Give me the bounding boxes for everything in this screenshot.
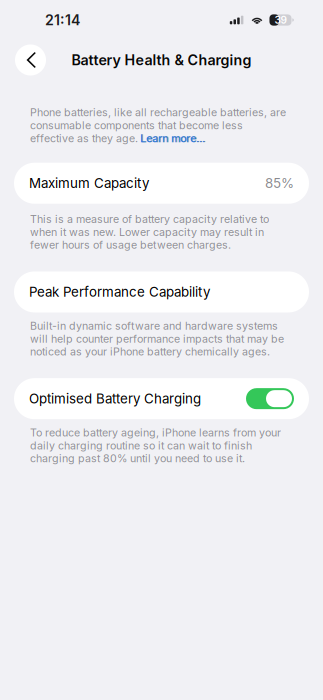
staticText: Phone batteries, like all rechargeable b… bbox=[30, 106, 286, 145]
staticText: Built-in dynamic software and hardware s… bbox=[30, 319, 284, 358]
staticText: This is a measure of battery capacity re… bbox=[30, 213, 269, 251]
staticText: Peak Performance Capability bbox=[29, 284, 210, 300]
staticText: 21:14 bbox=[45, 11, 80, 28]
button[interactable]: Back bbox=[15, 44, 46, 75]
button[interactable]: Peak Performance Capability bbox=[0, 271, 323, 312]
staticText: Learn more... bbox=[140, 132, 205, 145]
staticText: To reduce battery ageing, iPhone learns … bbox=[30, 426, 281, 465]
staticText: Battery Health & Charging bbox=[71, 51, 251, 69]
staticText: 39 bbox=[274, 14, 286, 26]
button[interactable]: Maximum Capacity bbox=[0, 163, 323, 204]
button[interactable]: Optimised Battery Charging bbox=[0, 378, 323, 419]
staticText: Optimised Battery Charging bbox=[29, 391, 201, 407]
staticText: Maximum Capacity bbox=[29, 175, 149, 191]
staticText: 85% bbox=[265, 175, 294, 191]
